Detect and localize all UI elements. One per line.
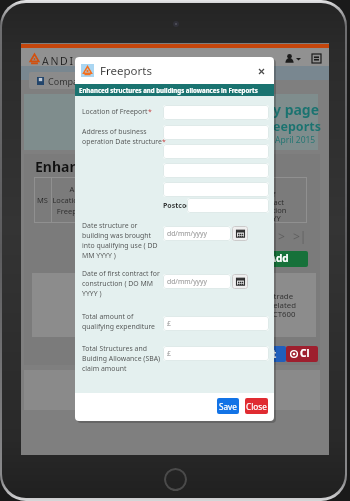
button[interactable]: Save [217,398,239,414]
button[interactable] [163,105,269,120]
button[interactable]: Menu [312,54,321,63]
staticText: ng to a trade [246,291,294,302]
staticText: * [148,107,152,116]
staticText: n form CT600 [246,309,296,320]
staticText: operation Date structure [82,137,162,146]
button[interactable]: Close [286,346,318,362]
staticText: Add New [269,251,308,267]
staticText: Total amount of qualifying expenditure [82,312,155,331]
staticText: A Location of Freeport [52,184,92,216]
staticText: y page [273,100,320,119]
staticText: Save [219,401,237,412]
button[interactable] [187,198,269,213]
staticText: > [278,228,285,244]
button[interactable] [163,125,269,140]
staticText: Freeports [100,63,152,79]
staticText: Enhanced [35,157,103,176]
button[interactable]: £ [163,346,269,361]
staticText: MS [37,195,48,205]
staticText: unt unrelated [246,300,296,311]
button[interactable]: Close [245,398,268,414]
staticText: Location of Freeport [82,107,148,116]
button[interactable] [163,144,269,159]
staticText: D ate of contract struction M YYYY [255,181,287,223]
button[interactable]: dd/mm/yyyy [163,274,231,289]
staticText: Address of business [82,127,147,136]
staticText: £ [167,319,171,328]
staticText: ANDICA [42,54,92,68]
button[interactable] [163,182,269,197]
button[interactable]: Company [29,72,97,89]
button[interactable]: Account [285,54,301,63]
button[interactable]: dd/mm/yyyy [163,226,231,241]
staticText: Close [300,346,314,362]
staticText: Total Structures and Buiding Allowance (… [82,344,161,373]
button[interactable]: Pick date [232,226,248,241]
staticText: Enhanced structures and buildings allowa… [79,86,258,94]
staticText: Postcode [163,201,195,211]
staticText: Date of first contract for construction … [82,269,160,298]
staticText: £ [167,349,171,358]
staticText: dd/mm/yyyy [167,229,207,238]
staticText: Close [246,401,267,412]
staticText: eeports [273,118,321,135]
staticText: t [272,347,277,361]
staticText: Date structure or building was brought i… [82,221,158,260]
staticText: Company [48,75,89,87]
button[interactable]: Close dialog [254,64,268,78]
staticText: >| [293,228,307,244]
button[interactable]: t [263,346,286,362]
staticText: April 2015 [275,134,316,146]
button[interactable]: £ [163,316,269,331]
staticText: * [162,137,166,146]
staticText: dd/mm/yyyy [167,277,207,286]
button[interactable] [163,163,269,178]
button[interactable]: Pick date [232,274,248,289]
button[interactable]: Add New [269,251,308,267]
